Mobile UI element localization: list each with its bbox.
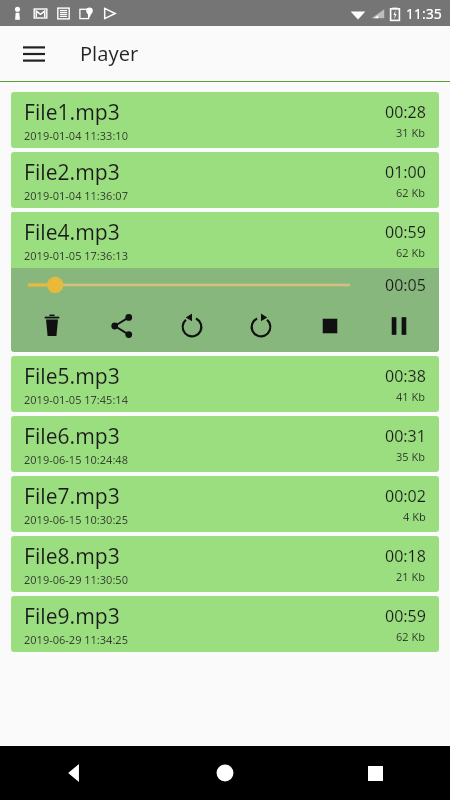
staticText: File2.mp3 (24, 158, 120, 187)
staticText: File5.mp3 (24, 362, 120, 391)
button[interactable]: Home (150, 746, 300, 800)
staticText: 00:31 (385, 425, 426, 447)
staticText: 00:02 (385, 485, 426, 507)
staticText: 2019-06-15 10:24:48 (24, 452, 128, 467)
staticText: 4 Kb (403, 509, 426, 524)
staticText: File4.mp3 (24, 218, 120, 247)
staticText: 2019-06-29 11:30:50 (24, 572, 128, 587)
staticText: 62 Kb (396, 629, 426, 644)
button[interactable]: Pause (364, 302, 433, 350)
button[interactable]: Open navigation menu (12, 32, 56, 76)
button[interactable]: File4.mp3 (11, 212, 439, 268)
staticText: 11:35 (406, 4, 442, 23)
button[interactable]: File7.mp3 (11, 476, 439, 532)
staticText: 00:18 (385, 545, 426, 567)
staticText: 21 Kb (396, 569, 426, 584)
staticText: 31 Kb (396, 125, 426, 140)
staticText: 41 Kb (396, 389, 426, 404)
staticText: 2019-01-04 11:33:10 (24, 128, 128, 143)
staticText: 62 Kb (396, 245, 426, 260)
button[interactable]: Seek bar (29, 273, 349, 297)
staticText: 01:00 (385, 161, 426, 183)
button[interactable]: File5.mp3 (11, 356, 439, 412)
staticText: 00:59 (385, 221, 426, 243)
staticText: 2019-01-05 17:45:14 (24, 392, 128, 407)
button[interactable]: File6.mp3 (11, 416, 439, 472)
button[interactable]: Share (87, 302, 157, 350)
button[interactable]: Stop (295, 302, 364, 350)
button[interactable]: File9.mp3 (11, 596, 439, 652)
staticText: 62 Kb (396, 185, 426, 200)
button[interactable]: File8.mp3 (11, 536, 439, 592)
staticText: File7.mp3 (24, 482, 120, 511)
staticText: 00:59 (385, 605, 426, 627)
staticText: 2019-01-04 11:36:07 (24, 188, 128, 203)
button[interactable]: Forward 5 seconds (226, 302, 295, 350)
button[interactable]: File1.mp3 (11, 92, 439, 148)
button[interactable]: Back (0, 746, 150, 800)
button[interactable]: File2.mp3 (11, 152, 439, 208)
button[interactable]: Recent apps (300, 746, 450, 800)
staticText: 2019-01-05 17:36:13 (24, 248, 128, 263)
staticText: File1.mp3 (24, 98, 120, 127)
button[interactable]: Rewind 5 seconds (157, 302, 226, 350)
button[interactable]: Delete (17, 302, 87, 350)
staticText: 00:28 (385, 101, 426, 123)
staticText: Player (80, 40, 139, 67)
staticText: File6.mp3 (24, 422, 120, 451)
staticText: 00:05 (385, 274, 426, 296)
staticText: 2019-06-15 10:30:25 (24, 512, 128, 527)
staticText: 2019-06-29 11:34:25 (24, 632, 128, 647)
staticText: 00:38 (385, 365, 426, 387)
staticText: 35 Kb (396, 449, 426, 464)
staticText: File8.mp3 (24, 542, 120, 571)
staticText: File9.mp3 (24, 602, 120, 631)
